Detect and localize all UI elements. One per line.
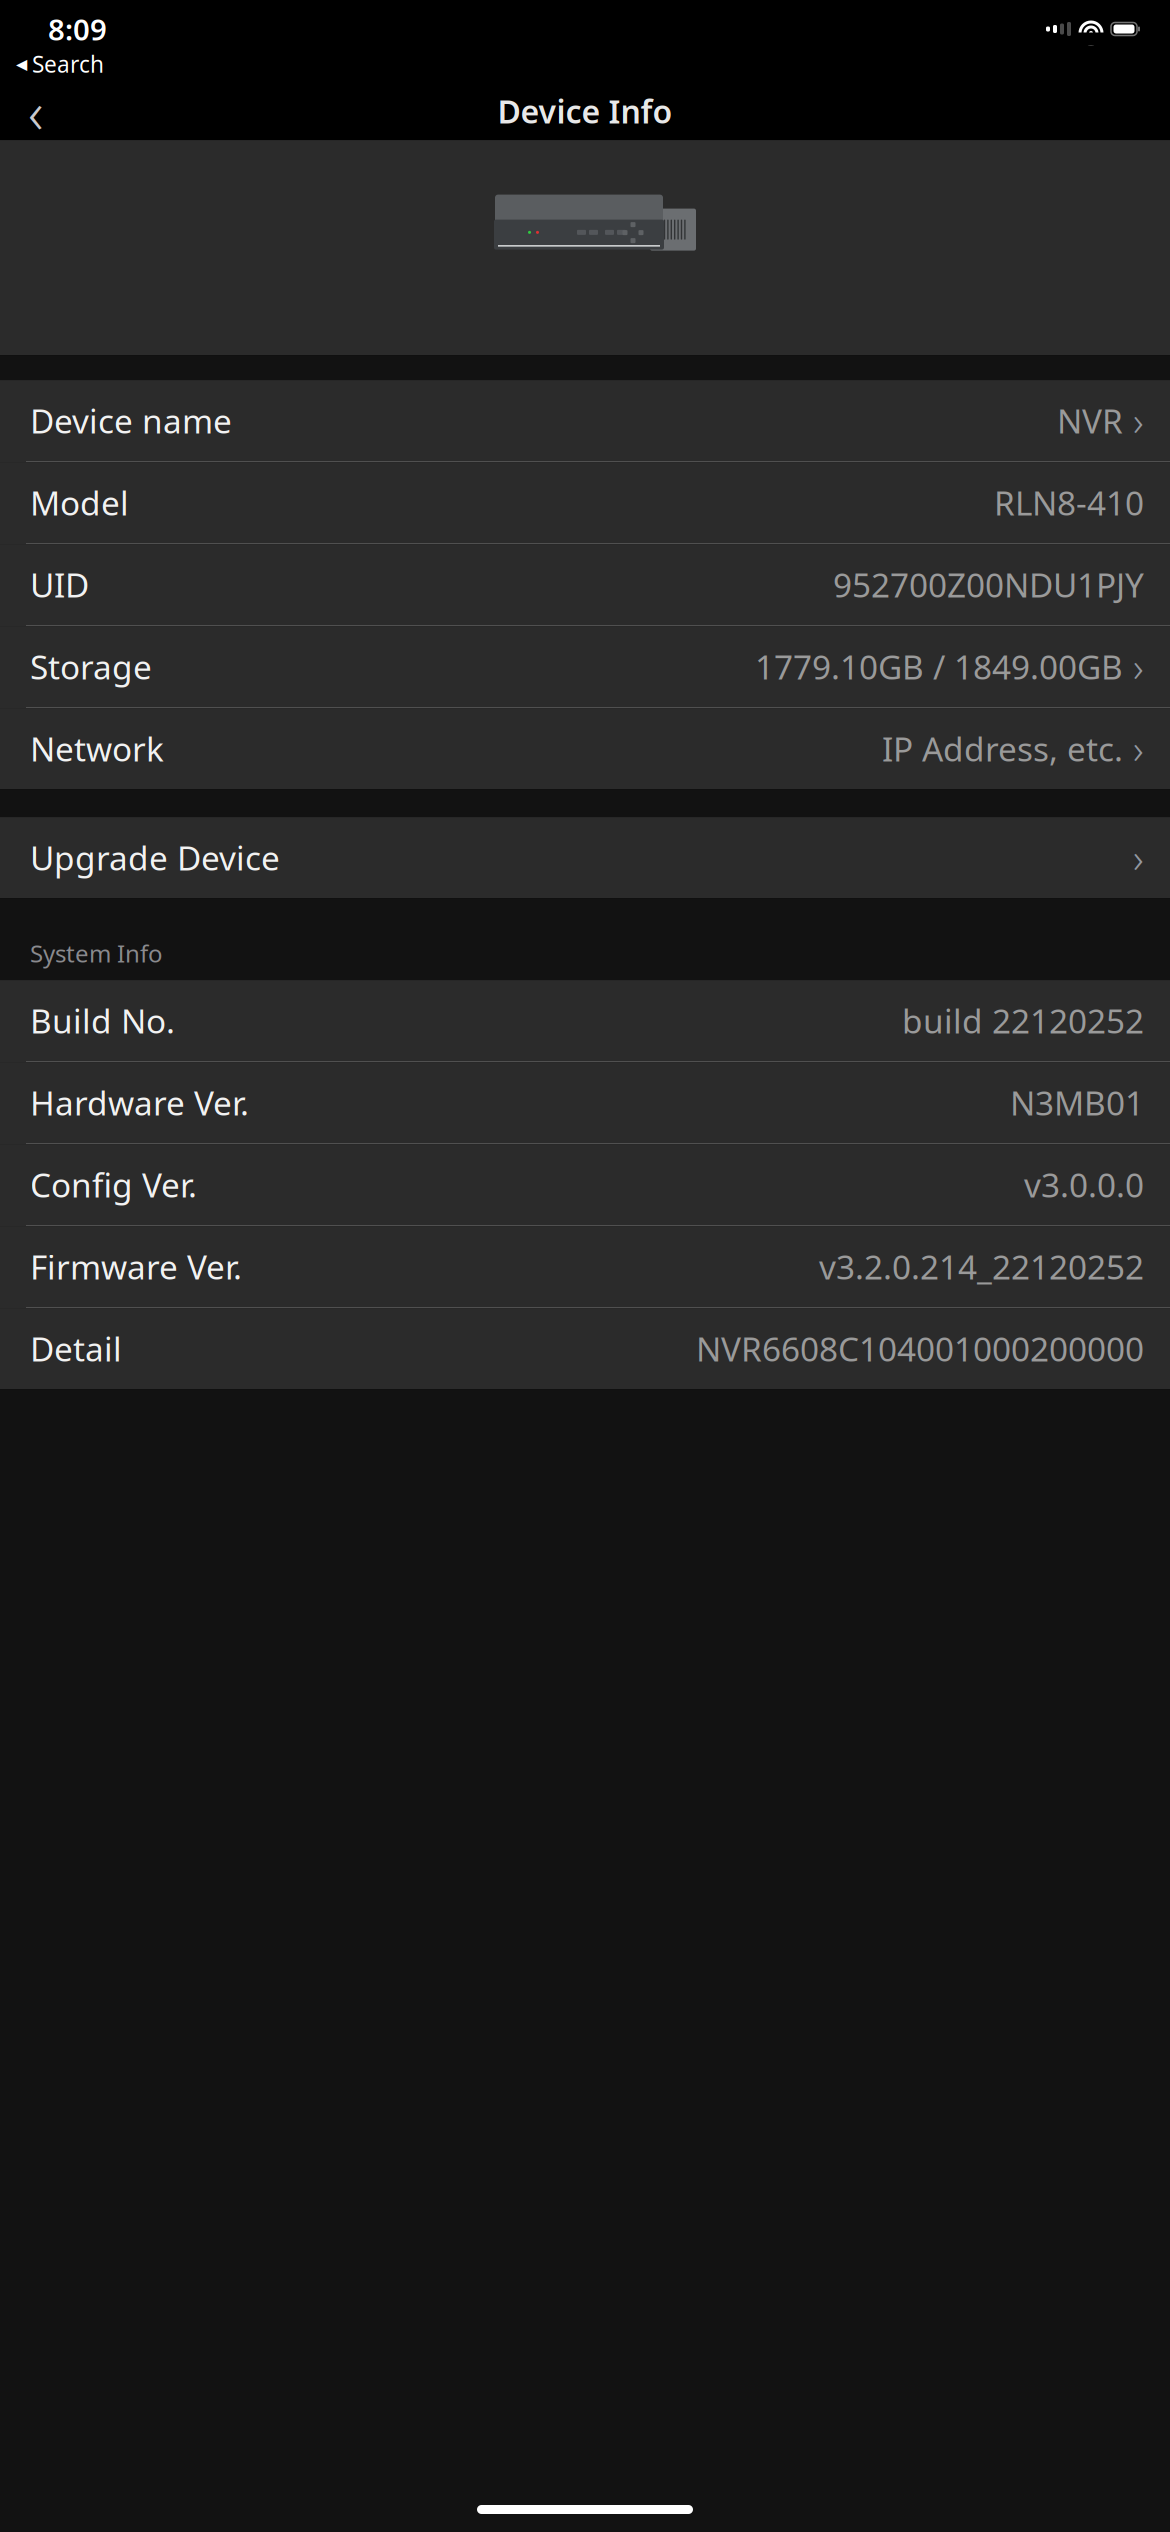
button[interactable]: ◀ [0,46,104,82]
staticText: 1779.10GB / 1849.00GB [755,644,1123,689]
staticText: Hardware Ver. [30,1080,249,1125]
staticText: Device Info [497,90,672,132]
staticText: ◀ [16,56,27,72]
staticText: Model [30,480,129,525]
staticText: › [1133,722,1144,775]
button[interactable]: Device name [0,380,1170,462]
staticText: v3.2.0.214_22120252 [819,1244,1144,1289]
staticText: 8:09 [48,9,107,48]
staticText: Detail [30,1326,122,1371]
staticText: Upgrade Device [30,835,280,880]
staticText: NVR6608C104001000200000 [696,1326,1144,1371]
button[interactable]: Firmware Ver. [0,1226,1170,1308]
staticText: UID [30,562,89,607]
staticText: IP Address, etc. [882,726,1123,771]
button[interactable]: Upgrade Device [0,817,1170,898]
staticText: Device name [30,398,232,443]
staticText: Search [32,49,104,79]
staticText: › [1133,640,1144,693]
button[interactable]: Back [10,85,62,137]
staticText: › [1133,831,1144,884]
button[interactable]: Config Ver. [0,1144,1170,1226]
staticText: NVR [1057,398,1123,443]
staticText: Network [30,726,164,771]
button[interactable]: Build No. [0,980,1170,1062]
staticText: build 22120252 [902,998,1144,1043]
staticText: v3.0.0.0 [1024,1162,1144,1207]
button[interactable]: UID [0,544,1170,626]
staticText: Build No. [30,998,175,1043]
button[interactable]: Model [0,462,1170,544]
staticText: System Info [30,937,163,969]
button[interactable]: Hardware Ver. [0,1062,1170,1144]
staticText: 952700Z00NDU1PJY [833,562,1144,607]
staticText: ‹ [28,72,44,150]
staticText: › [1133,394,1144,447]
staticText: Config Ver. [30,1162,197,1207]
staticText: Storage [30,644,152,689]
button[interactable]: Storage [0,626,1170,708]
staticText: N3MB01 [1010,1080,1144,1125]
button[interactable]: Detail [0,1308,1170,1389]
staticText: RLN8-410 [994,480,1144,525]
staticText: Firmware Ver. [30,1244,242,1289]
button[interactable]: Network [0,708,1170,789]
